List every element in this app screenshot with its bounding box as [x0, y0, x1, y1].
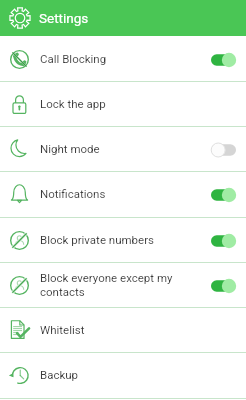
staticText: Lock the app [40, 97, 106, 110]
button[interactable]: Lock the app [0, 82, 246, 127]
button[interactable]: Block everyone except my contacts [0, 263, 246, 308]
staticText: Block everyone except my contacts [40, 271, 173, 299]
staticText: Notifications [40, 187, 106, 200]
staticText: Settings [39, 10, 89, 26]
button[interactable]: Backup [0, 353, 246, 398]
button[interactable]: Night mode [0, 127, 246, 172]
staticText: Night mode [40, 142, 100, 155]
button[interactable]: Block private numbers [0, 218, 246, 263]
button[interactable]: Settings [0, 0, 246, 36]
button[interactable]: Toggle off [211, 127, 236, 172]
other: Settings [9, 7, 31, 29]
button[interactable]: Notifications [0, 172, 246, 217]
staticText: Call Blocking [40, 52, 107, 65]
button[interactable]: Toggle on [211, 263, 236, 308]
button[interactable]: Whitelist [0, 308, 246, 353]
button[interactable]: Call Blocking [0, 37, 246, 82]
staticText: Backup [40, 368, 79, 381]
button[interactable]: Toggle on [211, 218, 236, 263]
button[interactable]: Toggle on [211, 172, 236, 217]
button[interactable]: Toggle on [211, 37, 236, 82]
staticText: Block private numbers [40, 233, 154, 246]
staticText: Whitelist [40, 323, 85, 336]
